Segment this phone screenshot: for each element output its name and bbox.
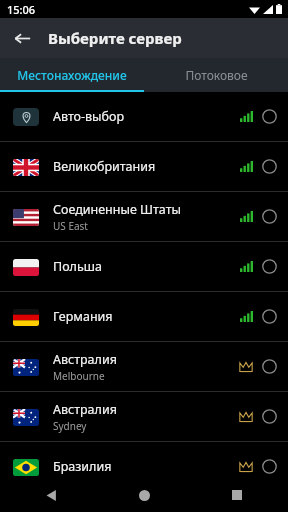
button[interactable]: Recents bbox=[220, 478, 254, 512]
staticText: Местонахождение bbox=[17, 67, 127, 83]
button[interactable]: Местонахождение bbox=[0, 58, 144, 92]
staticText: Австралия bbox=[53, 351, 117, 368]
button[interactable]: Back bbox=[34, 478, 68, 512]
button[interactable]: Великобритания bbox=[0, 142, 288, 191]
button[interactable]: Потоковое bbox=[144, 58, 288, 92]
staticText: Германия bbox=[53, 308, 113, 325]
staticText: Бразилия bbox=[53, 458, 112, 475]
button[interactable]: Авто-выбор bbox=[0, 92, 288, 141]
button[interactable]: Бразилия bbox=[0, 442, 288, 491]
button[interactable]: Home bbox=[127, 478, 161, 512]
staticText: Выберите сервер bbox=[48, 28, 182, 48]
staticText: Авто-выбор bbox=[53, 108, 125, 125]
staticText: Австралия bbox=[53, 401, 117, 418]
button[interactable]: Австралия bbox=[0, 392, 288, 441]
staticText: Соединенные Штаты bbox=[53, 201, 181, 218]
staticText: Великобритания bbox=[53, 158, 156, 175]
button[interactable]: Back bbox=[4, 20, 40, 56]
button[interactable]: Польша bbox=[0, 242, 288, 291]
staticText: Melbourne bbox=[53, 369, 105, 383]
staticText: Sydney bbox=[53, 419, 87, 433]
staticText: 15:06 bbox=[7, 2, 36, 17]
button[interactable]: Соединенные Штаты bbox=[0, 192, 288, 241]
button[interactable]: Австралия bbox=[0, 342, 288, 391]
button[interactable]: Германия bbox=[0, 292, 288, 341]
staticText: Польша bbox=[53, 258, 102, 275]
staticText: Потоковое bbox=[185, 67, 248, 83]
staticText: US East bbox=[53, 219, 88, 233]
